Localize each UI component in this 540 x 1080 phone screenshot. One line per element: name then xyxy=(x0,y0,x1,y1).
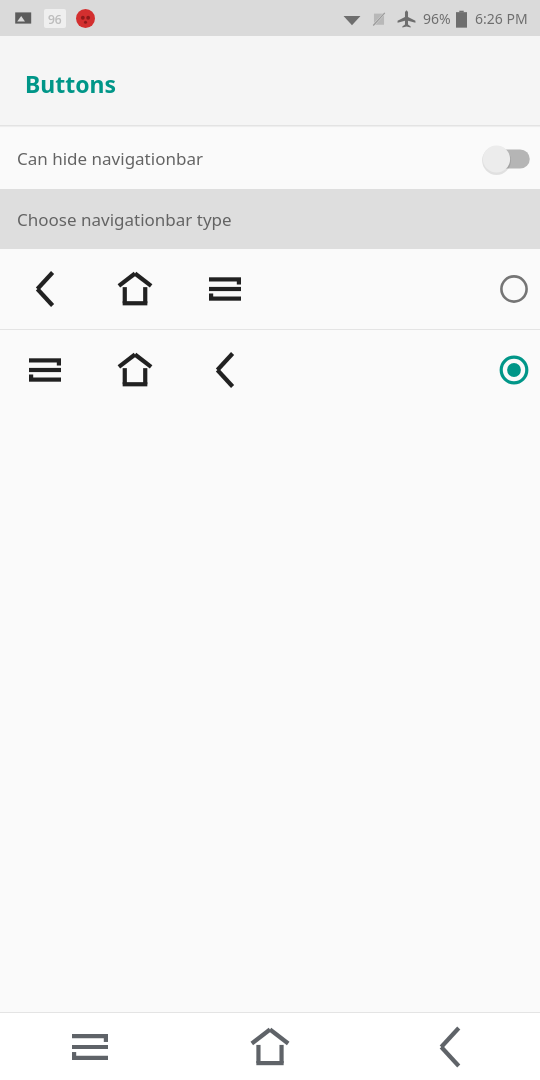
staticText: 96 xyxy=(48,11,62,27)
button[interactable] xyxy=(476,142,532,176)
staticText: 96% xyxy=(423,9,451,28)
staticText: Can hide navigationbar xyxy=(17,147,203,170)
button[interactable]: Home xyxy=(180,1013,360,1080)
staticText: Buttons xyxy=(25,68,117,99)
button[interactable]: Recent apps xyxy=(0,1013,180,1080)
staticText: 6:26 PM xyxy=(475,9,528,28)
button[interactable]: Back xyxy=(360,1013,540,1080)
button[interactable] xyxy=(0,330,540,410)
button[interactable]: Can hide navigationbar xyxy=(0,128,540,189)
button[interactable] xyxy=(0,249,540,329)
staticText: Choose navigationbar type xyxy=(17,208,232,231)
